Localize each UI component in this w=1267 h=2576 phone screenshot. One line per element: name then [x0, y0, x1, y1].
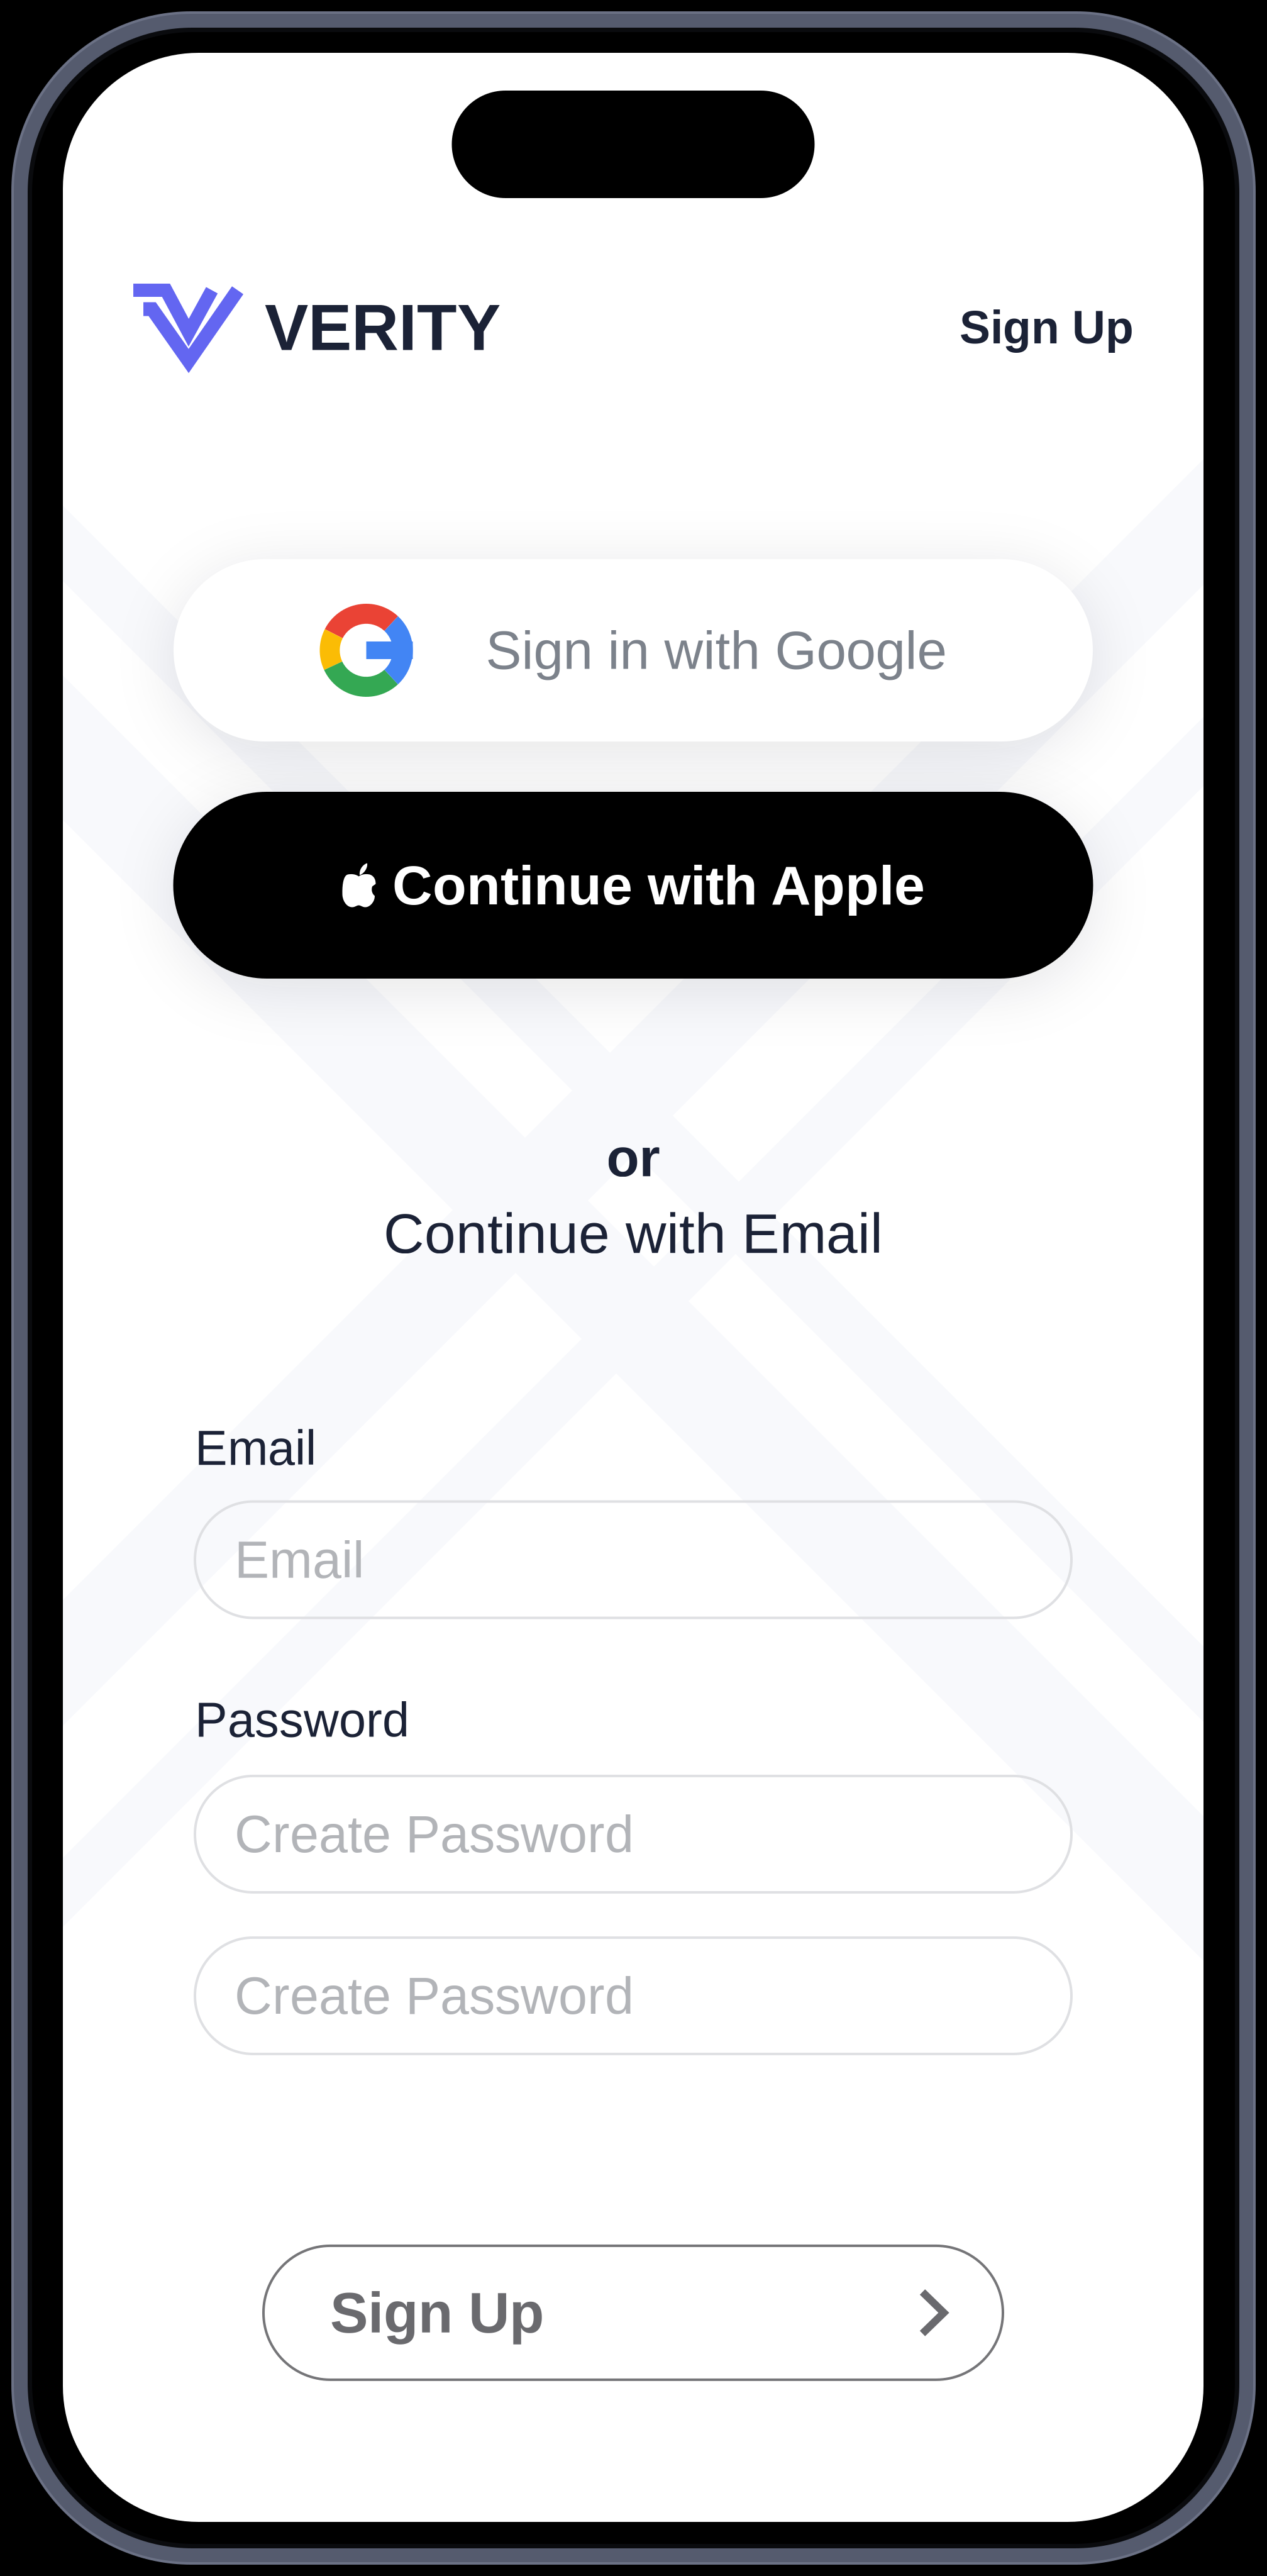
staticText: Password [195, 1693, 409, 1747]
button[interactable]: Sign Up [960, 290, 1134, 364]
staticText: Email [195, 1421, 316, 1475]
staticText: Continue with Email [384, 1202, 883, 1265]
button[interactable]: Create Password [195, 1776, 1071, 1892]
staticText: Sign in with Google [486, 620, 947, 680]
button[interactable]: Continue with Apple [173, 792, 1093, 979]
button[interactable]: Sign Up [263, 2246, 1003, 2380]
staticText: Sign Up [960, 302, 1134, 353]
staticText: or [606, 1128, 660, 1188]
button[interactable]: Email [195, 1502, 1071, 1618]
staticText: Create Password [235, 1805, 634, 1863]
staticText: Continue with Apple [392, 854, 925, 916]
staticText: Create Password [235, 1967, 634, 2025]
staticText: Sign Up [330, 2281, 544, 2345]
staticText: Email [235, 1531, 364, 1589]
button[interactable]: Create Password [195, 1938, 1071, 2054]
button[interactable]: Sign in with Google [174, 559, 1093, 741]
staticText: VERITY [265, 291, 501, 364]
